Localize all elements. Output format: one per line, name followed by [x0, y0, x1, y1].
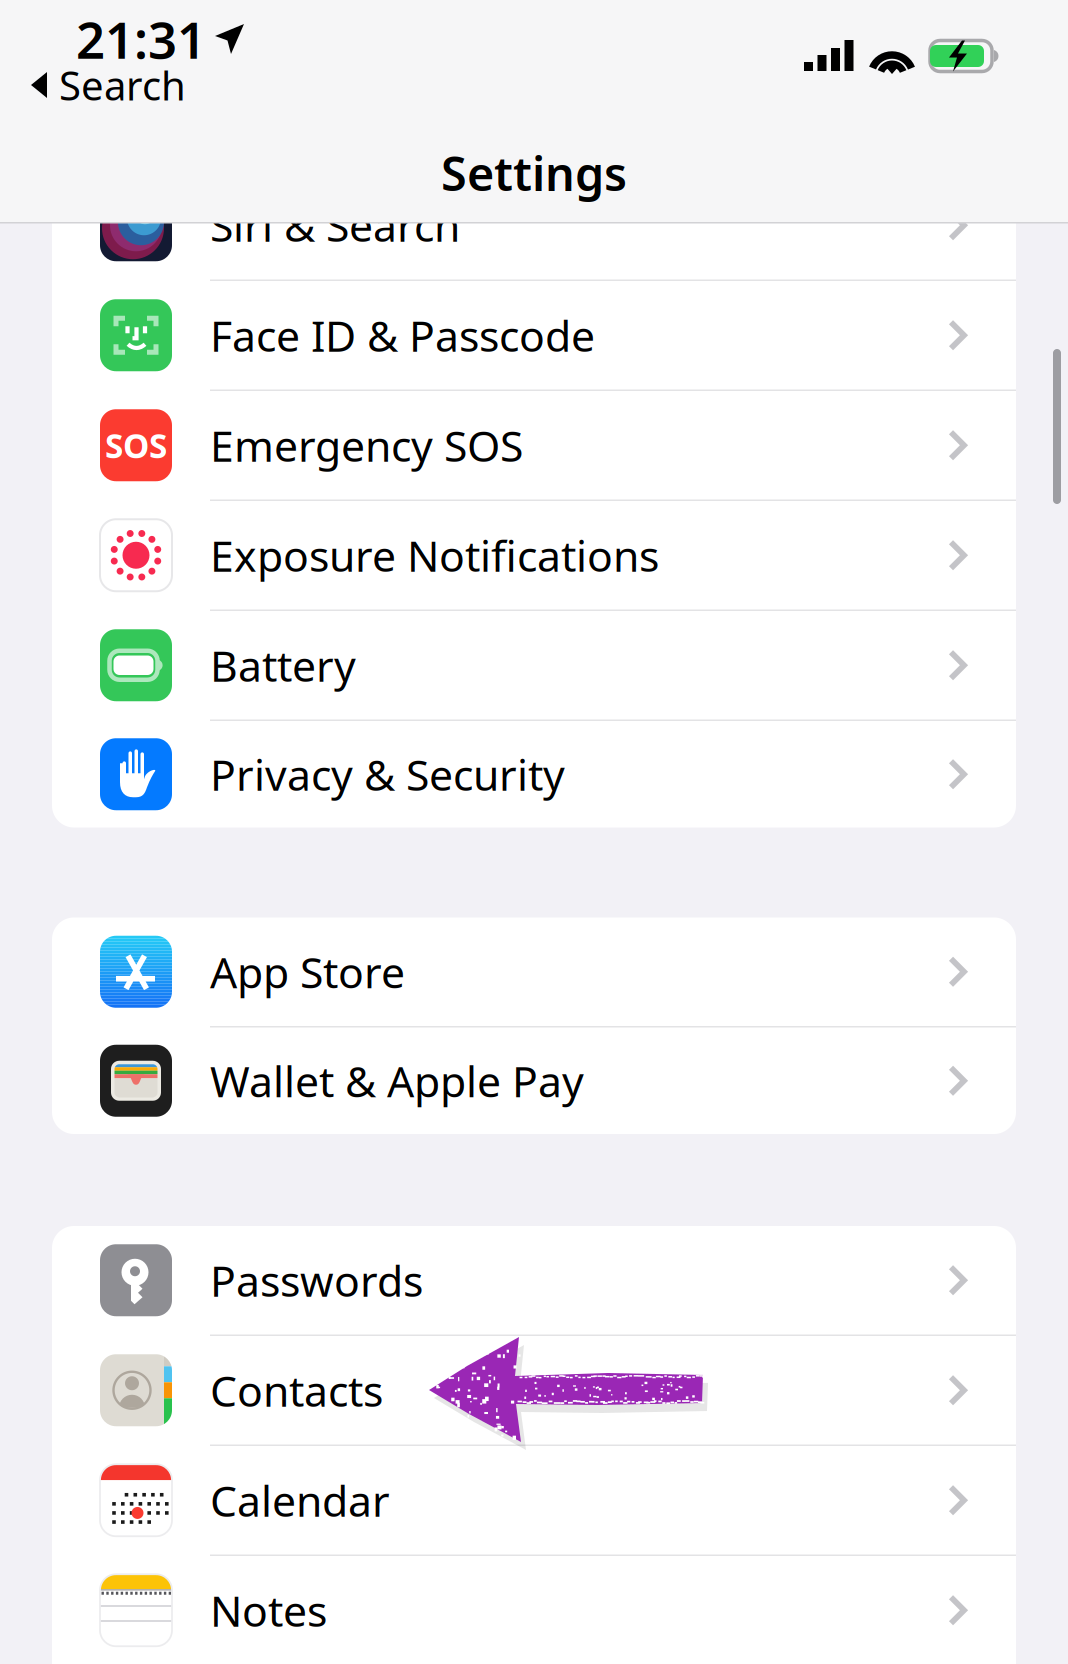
staticText: Wallet & Apple Pay [210, 1052, 584, 1109]
button[interactable]: Wallet & Apple Pay [52, 1027, 1016, 1134]
button[interactable]: Calendar [52, 1446, 1016, 1556]
staticText: App Store [210, 943, 405, 1000]
staticText: Face ID & Passcode [210, 307, 595, 364]
staticText: Emergency SOS [210, 417, 523, 474]
staticText: SOS [105, 423, 167, 467]
button[interactable]: App Store [52, 917, 1016, 1027]
button[interactable]: SOS [52, 391, 1016, 501]
button[interactable]: Privacy & Security [52, 721, 1016, 827]
staticText: Exposure Notifications [210, 527, 659, 584]
button[interactable]: Search [30, 62, 186, 108]
button[interactable]: Siri & Search [52, 171, 1016, 281]
button[interactable]: Exposure Notifications [52, 501, 1016, 611]
button[interactable]: Contacts [52, 1336, 1016, 1446]
staticText: Contacts [210, 1362, 383, 1419]
staticText: Search [59, 58, 186, 111]
staticText: Siri & Search [210, 197, 460, 254]
staticText: Passwords [210, 1252, 423, 1309]
button[interactable]: Battery [52, 611, 1016, 721]
staticText: Settings [441, 142, 627, 204]
staticText: 21:31 [76, 5, 206, 73]
staticText: Privacy & Security [210, 746, 565, 803]
staticText: Notes [210, 1582, 327, 1639]
button[interactable]: Notes [52, 1556, 1016, 1664]
button[interactable]: Face ID & Passcode [52, 281, 1016, 391]
button[interactable]: Passwords [52, 1226, 1016, 1336]
staticText: Battery [210, 637, 356, 694]
staticText: Calendar [210, 1472, 390, 1529]
